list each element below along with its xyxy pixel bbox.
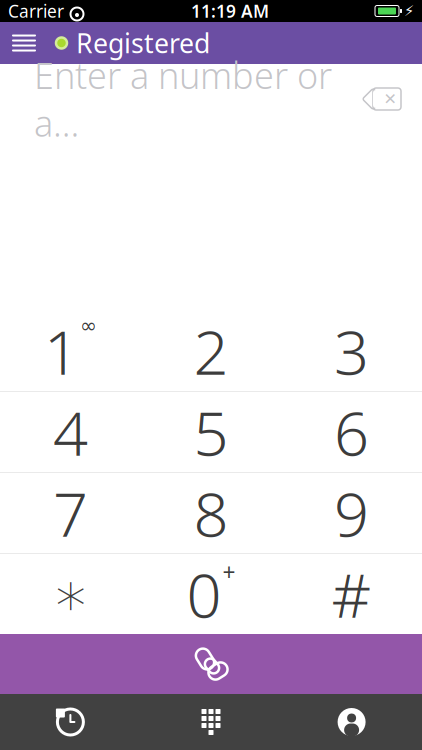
staticText: 2 <box>193 310 228 392</box>
button[interactable]: Recents <box>0 694 141 750</box>
staticText: ∞ <box>80 314 97 337</box>
button[interactable]: 5 <box>141 392 281 472</box>
button[interactable]: 7 <box>0 473 141 553</box>
staticText: Registered <box>76 25 210 61</box>
button[interactable]: Menu <box>4 23 44 63</box>
staticText: 5 <box>193 391 228 473</box>
staticText: ⚡︎ <box>404 3 414 19</box>
staticText: 7 <box>53 472 88 554</box>
button[interactable]: Backspace <box>360 84 404 114</box>
staticText: Carrier <box>8 0 64 22</box>
button[interactable]: 1 <box>0 311 141 391</box>
button[interactable]: 8 <box>141 473 281 553</box>
button[interactable]: 3 <box>281 311 422 391</box>
button[interactable]: 9 <box>281 473 422 553</box>
staticText: ✕ <box>383 90 396 108</box>
button[interactable]: Keypad <box>141 694 281 750</box>
staticText: 1 <box>44 310 79 392</box>
staticText: 3 <box>334 310 369 392</box>
button[interactable]: 6 <box>281 392 422 472</box>
button[interactable]: Contacts <box>281 694 422 750</box>
button[interactable]: Call <box>0 634 422 694</box>
staticText: Enter a number or a… <box>34 51 332 147</box>
button[interactable]: # <box>281 554 422 634</box>
staticText: 4 <box>53 391 88 473</box>
staticText: 8 <box>193 472 228 554</box>
button[interactable]: 4 <box>0 392 141 472</box>
staticText: # <box>332 553 372 635</box>
staticText: + <box>222 557 235 587</box>
button[interactable]: Registered <box>44 17 210 69</box>
staticText: 6 <box>334 391 369 473</box>
staticText: 0 <box>186 553 221 635</box>
button[interactable]: 2 <box>141 311 281 391</box>
button[interactable]: 0 <box>141 554 281 634</box>
staticText: 11:19 AM <box>191 0 269 22</box>
staticText: ∗ <box>51 559 89 629</box>
staticText: 9 <box>334 472 369 554</box>
button[interactable]: ∗ <box>0 554 141 634</box>
